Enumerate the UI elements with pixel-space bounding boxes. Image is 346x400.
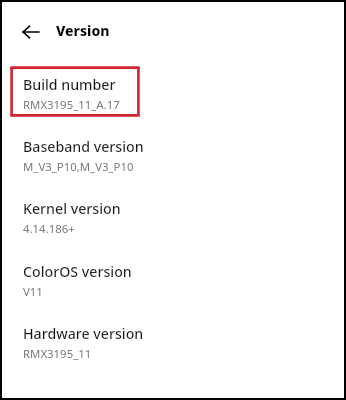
button[interactable]: Kernel version (2, 199, 344, 245)
staticText: RMX3195_11 (23, 346, 92, 362)
staticText: 4.14.186+ (23, 221, 75, 237)
staticText: Hardware version (23, 324, 144, 343)
button[interactable]: Hardware version (2, 324, 344, 370)
staticText: Baseband version (23, 137, 144, 156)
button[interactable]: Navigate up (18, 19, 44, 45)
button[interactable]: Version (56, 21, 110, 40)
button[interactable]: ColorOS version (2, 262, 344, 308)
staticText: Kernel version (23, 199, 121, 218)
staticText: RMX3195_11_A.17 (23, 97, 120, 113)
staticText: ColorOS version (23, 262, 132, 281)
staticText: Build number (23, 75, 116, 94)
staticText: Version (56, 21, 110, 40)
staticText: M_V3_P10,M_V3_P10 (23, 159, 134, 175)
button[interactable]: Baseband version (2, 137, 344, 183)
button[interactable]: Build number (2, 75, 344, 121)
staticText: V11 (23, 284, 43, 300)
